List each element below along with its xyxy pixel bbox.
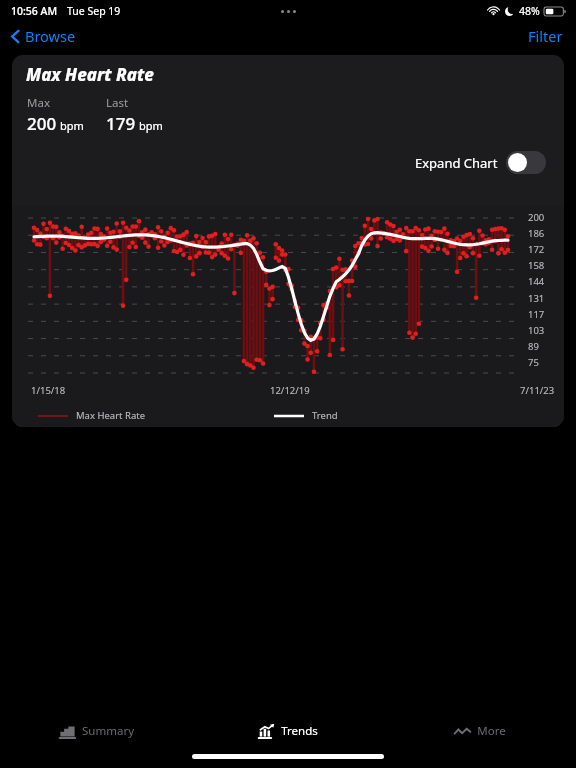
button[interactable]: Trends [192, 712, 384, 750]
staticText: 89 [528, 340, 539, 353]
staticText: Trend [312, 409, 338, 422]
staticText: Expand Chart [415, 154, 498, 172]
staticText: bpm [60, 118, 84, 133]
staticText: bpm [139, 118, 163, 133]
staticText: 144 [528, 275, 545, 288]
staticText: Max Heart Rate [26, 63, 154, 86]
staticText: 12/12/19 [270, 384, 310, 397]
staticText: Trends [281, 723, 318, 739]
staticText: Summary [82, 723, 134, 739]
staticText: Filter [528, 26, 563, 46]
staticText: 75 [528, 356, 539, 369]
staticText: 131 [528, 292, 545, 305]
staticText: Last [106, 95, 129, 111]
button[interactable]: Expand Chart [413, 149, 548, 176]
staticText: 158 [528, 259, 545, 272]
staticText: Max [27, 95, 50, 111]
staticText: 10:56 AM [11, 4, 58, 18]
button[interactable]: Summary [0, 712, 192, 750]
staticText: Browse [25, 26, 76, 46]
staticText: 200 [528, 211, 545, 224]
staticText: 172 [528, 243, 545, 256]
staticText: 200 [27, 112, 57, 135]
staticText: 7/11/23 [520, 384, 555, 397]
button[interactable]: Browse [5, 24, 80, 48]
staticText: 186 [528, 227, 545, 240]
staticText: 117 [528, 308, 545, 321]
staticText: More [477, 723, 506, 739]
button[interactable]: Filter [524, 24, 567, 48]
staticText: 103 [528, 324, 545, 337]
staticText: Max Heart Rate [76, 409, 146, 422]
staticText: Tue Sep 19 [67, 4, 121, 18]
staticText: 1/15/18 [31, 384, 66, 397]
staticText: 48% [519, 4, 540, 18]
button[interactable]: More [384, 712, 576, 750]
staticText: 179 [106, 112, 136, 135]
